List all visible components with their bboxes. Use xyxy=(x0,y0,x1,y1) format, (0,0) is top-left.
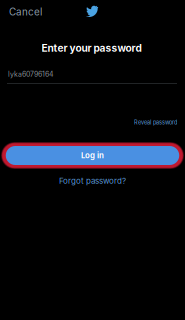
staticText: Log in xyxy=(81,151,104,160)
staticText: Cancel xyxy=(9,6,42,18)
button[interactable]: Reveal password xyxy=(128,117,185,128)
button[interactable]: Log in xyxy=(0,142,185,169)
button[interactable]: Forgot password? xyxy=(53,174,132,188)
staticText: lyka60796164 xyxy=(8,70,53,78)
staticText: Forgot password? xyxy=(59,176,126,186)
staticText: Reveal password xyxy=(134,119,177,126)
button[interactable]: lyka60796164 xyxy=(0,70,185,88)
staticText: Enter your password xyxy=(41,42,141,54)
button[interactable]: Cancel xyxy=(0,0,51,23)
